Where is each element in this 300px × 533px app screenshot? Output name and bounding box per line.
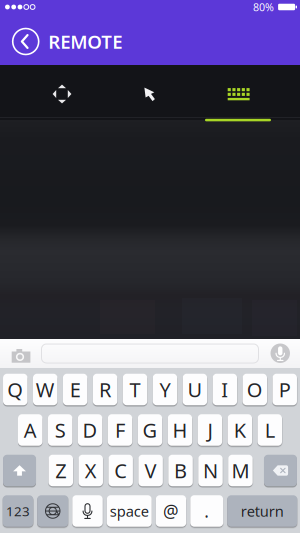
button[interactable]: F — [108, 414, 132, 446]
button[interactable]: A — [18, 414, 42, 446]
button[interactable]: U — [183, 374, 207, 405]
staticText: Q — [7, 376, 23, 403]
staticText: V — [145, 457, 157, 484]
button[interactable]: Next keyboard — [37, 495, 68, 527]
staticText: S — [55, 417, 66, 443]
staticText: L — [265, 417, 275, 443]
staticText: @ — [163, 499, 179, 522]
staticText: K — [234, 417, 246, 443]
button[interactable]: E — [63, 374, 87, 405]
staticText: . — [204, 499, 209, 522]
button[interactable]: V — [138, 455, 163, 486]
staticText: O — [247, 376, 263, 403]
button[interactable]: Return — [227, 495, 297, 527]
button[interactable]: L — [257, 414, 282, 446]
button[interactable]: H — [168, 414, 192, 446]
button[interactable]: D — [78, 414, 102, 446]
staticText: N — [203, 457, 218, 484]
staticText: H — [172, 417, 187, 443]
staticText: U — [187, 376, 202, 403]
staticText: G — [142, 417, 157, 443]
staticText: 80% — [253, 0, 274, 14]
button[interactable]: S — [48, 414, 72, 446]
button[interactable]: Z — [48, 455, 73, 486]
button[interactable]: I — [213, 374, 237, 405]
button[interactable]: . — [190, 495, 223, 527]
button[interactable]: Camera — [12, 349, 30, 363]
button[interactable]: O — [242, 374, 267, 405]
staticText: E — [70, 376, 81, 403]
button[interactable]: X — [78, 455, 103, 486]
staticText: I — [221, 376, 228, 403]
staticText: X — [85, 457, 97, 484]
button[interactable]: @ — [156, 495, 186, 527]
staticText: B — [174, 457, 187, 484]
button[interactable]: Dictation — [270, 343, 290, 363]
button[interactable]: N — [198, 455, 223, 486]
staticText: 123 — [6, 502, 30, 520]
staticText: C — [114, 457, 127, 484]
button[interactable]: T — [123, 374, 147, 405]
staticText: R — [99, 376, 111, 403]
staticText: P — [279, 376, 291, 403]
button[interactable]: Delete — [264, 455, 297, 486]
staticText: Y — [159, 376, 170, 403]
staticText: D — [83, 417, 98, 443]
button[interactable]: J — [198, 414, 222, 446]
button[interactable]: K — [228, 414, 252, 446]
staticText: REMOTE — [48, 29, 122, 54]
button[interactable]: Pan — [18, 67, 106, 121]
staticText: F — [115, 417, 125, 443]
button[interactable]: W — [33, 374, 57, 405]
button[interactable]: Shift — [3, 455, 36, 486]
button[interactable]: G — [138, 414, 162, 446]
button[interactable]: Y — [153, 374, 177, 405]
button[interactable]: C — [108, 455, 133, 486]
button[interactable]: Numbers — [3, 495, 33, 527]
button[interactable]: Q — [3, 374, 27, 405]
button[interactable]: Keyboard — [194, 67, 282, 121]
button[interactable]: P — [272, 374, 297, 405]
button[interactable]: R — [93, 374, 117, 405]
staticText: return — [241, 501, 284, 521]
button[interactable]: B — [168, 455, 193, 486]
button[interactable]: M — [228, 455, 253, 486]
staticText: A — [24, 417, 37, 443]
staticText: T — [129, 376, 140, 403]
button[interactable]: Text field — [41, 343, 259, 363]
button[interactable]: Space — [107, 495, 152, 527]
staticText: space — [110, 501, 149, 521]
button[interactable]: Dictate — [72, 495, 103, 527]
button[interactable]: Back — [13, 28, 39, 54]
button[interactable]: Pointer — [106, 67, 194, 121]
staticText: Z — [55, 457, 66, 484]
staticText: J — [207, 417, 212, 443]
staticText: W — [36, 376, 55, 403]
staticText: M — [231, 457, 249, 484]
